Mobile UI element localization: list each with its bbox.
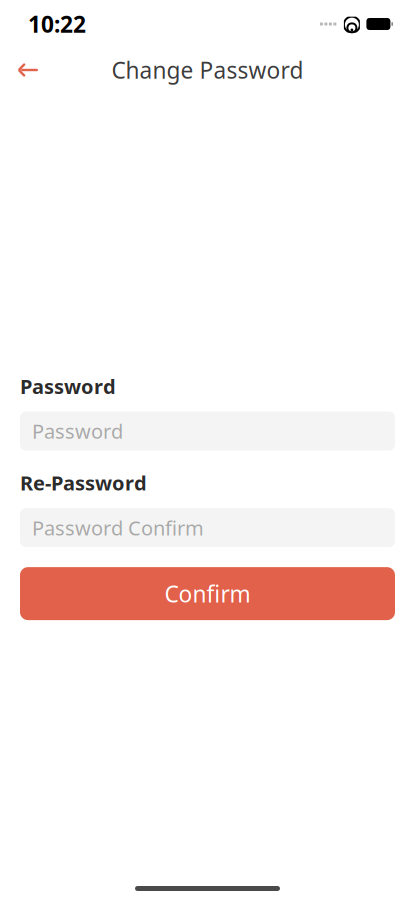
staticText: 10:22	[28, 9, 86, 39]
staticText: Re-Password	[20, 470, 147, 496]
staticText: Change Password	[111, 55, 303, 85]
staticText: Password Confirm	[32, 514, 204, 541]
button[interactable]: Password Confirm	[20, 508, 395, 547]
button[interactable]: Confirm	[20, 567, 395, 620]
staticText: Password	[20, 373, 116, 400]
button[interactable]: Password	[20, 412, 395, 451]
staticText: Password	[32, 418, 123, 444]
staticText: Confirm	[164, 579, 250, 609]
button[interactable]: Back	[6, 50, 50, 90]
